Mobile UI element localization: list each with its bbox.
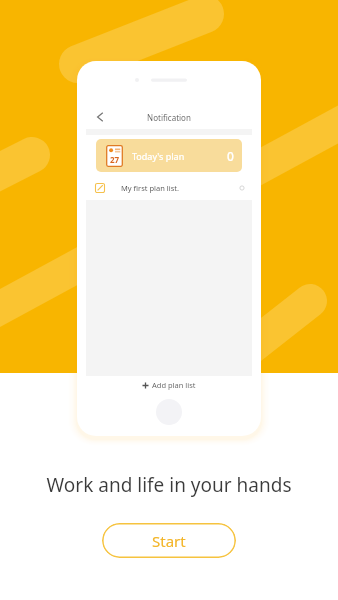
staticText: Notification (86, 112, 252, 123)
staticText: Today's plan (132, 150, 185, 162)
staticText: Work and life in your hands (0, 472, 338, 498)
button[interactable]: Start (102, 523, 236, 558)
button[interactable]: Back (86, 103, 114, 131)
button[interactable]: Add plan list (86, 376, 252, 394)
staticText: 27 (110, 154, 120, 165)
staticText: Start (152, 531, 186, 551)
staticText: Add plan list (152, 380, 196, 390)
button[interactable]: My first plan list. (86, 176, 252, 200)
button[interactable]: 27 (96, 139, 242, 172)
staticText: 0 (227, 148, 234, 164)
staticText: My first plan list. (121, 183, 179, 193)
